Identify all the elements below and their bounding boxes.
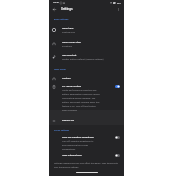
staticText: Focus settings [54,129,69,132]
staticText: Display off [62,119,74,122]
staticText: 10:47 [53,1,59,4]
button[interactable]: Off [115,154,120,157]
staticText: Custom [62,77,71,80]
button[interactable]: On [115,85,120,88]
staticText: A.I. game control [62,85,82,88]
button[interactable]: A.I. game control [49,83,124,110]
button[interactable]: Back [51,6,58,13]
staticText: Hide notifications [62,154,82,157]
button[interactable]: HiFi shortcut [49,51,124,64]
staticText: Turn off Adaptive brightness to avoid di… [62,140,99,151]
button[interactable]: Display off [49,110,124,125]
staticText: Settings changes here will only affect t… [54,162,119,169]
button[interactable]: Off [115,136,120,139]
button[interactable]: Custom [49,74,124,83]
staticText: Nano mode style [62,41,81,44]
button[interactable]: Hide notifications [49,152,124,155]
staticText: Basic settings [54,18,69,21]
staticText: Limits performance reduction and battery… [62,89,100,112]
staticText: HiFi shortcut [62,54,77,57]
staticText: Turn off Adaptive brightness [62,136,94,139]
staticText: Shutter button: Default (General setting… [62,58,104,61]
staticText: Nano type [62,27,74,30]
button[interactable]: More options [115,6,122,13]
staticText: Nano mode [54,68,66,71]
button[interactable]: Turn off Adaptive brightness [49,134,124,149]
staticText: sculptural [62,45,72,48]
button[interactable]: Nano type [49,24,124,37]
button[interactable]: Nano mode style [49,38,124,51]
staticText: 55% [117,2,121,4]
staticText: Floating icon [62,31,76,34]
staticText: Settings [61,7,73,11]
